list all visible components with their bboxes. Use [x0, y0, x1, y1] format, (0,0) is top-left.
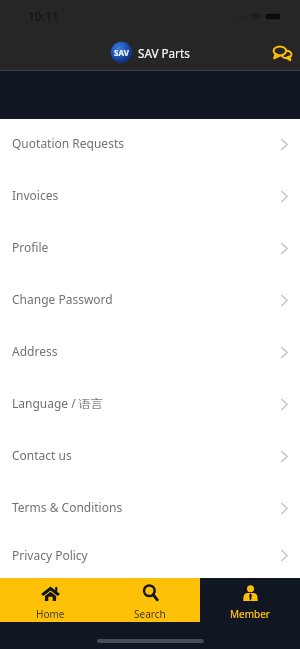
staticText: Language / 语言: [12, 395, 103, 411]
staticText: Search: [134, 607, 166, 621]
staticText: Contact us: [12, 447, 72, 463]
button[interactable]: Language / 语言: [0, 379, 300, 431]
staticText: Terms & Conditions: [12, 499, 123, 515]
button[interactable]: Address: [0, 327, 300, 379]
staticText: SAV Parts: [138, 45, 190, 61]
staticText: Member: [230, 607, 270, 621]
button[interactable]: Terms & Conditions: [0, 483, 300, 535]
staticText: Change Password: [12, 291, 113, 307]
staticText: Address: [12, 343, 58, 359]
button[interactable]: Invoices: [0, 171, 300, 223]
button[interactable]: Contact us: [0, 431, 300, 483]
staticText: Profile: [12, 239, 49, 255]
button[interactable]: Profile: [0, 223, 300, 275]
button[interactable]: Member: [200, 578, 300, 622]
staticText: Privacy Policy: [12, 547, 88, 563]
staticText: Invoices: [12, 187, 59, 203]
staticText: Home: [36, 607, 65, 621]
staticText: 10:11: [28, 8, 59, 24]
button[interactable]: Change Password: [0, 275, 300, 327]
staticText: SAV: [114, 47, 129, 58]
staticText: Quotation Requests: [12, 135, 124, 151]
button[interactable]: Privacy Policy: [0, 535, 300, 578]
button[interactable]: Quotation Requests: [0, 119, 300, 171]
button[interactable]: Search: [100, 578, 200, 622]
button[interactable]: Messages: [267, 38, 298, 69]
button[interactable]: Home: [0, 578, 100, 622]
